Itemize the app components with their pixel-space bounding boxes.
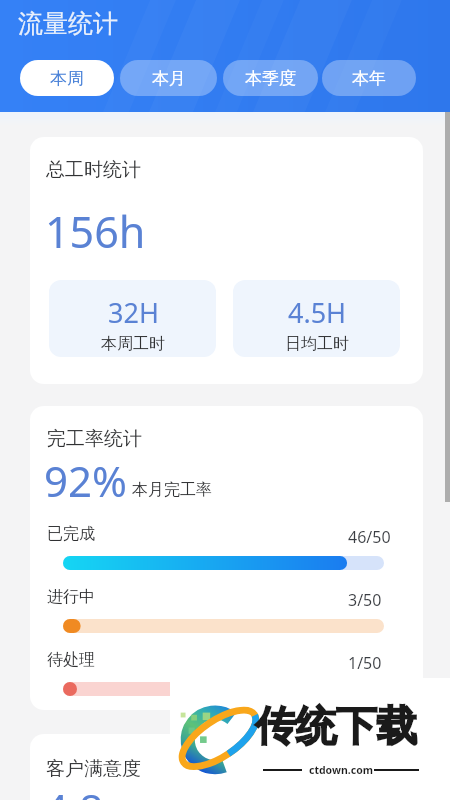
button[interactable]: 4.5H [233,280,400,357]
staticText: 3/50 [348,589,382,611]
staticText: 流量统计 [18,8,118,39]
button[interactable]: 本周 [20,60,114,96]
staticText: 进行中 [47,587,95,607]
button[interactable]: 本月 [120,60,217,96]
staticText: 本周 [50,68,84,89]
staticText: 92% [44,452,127,509]
staticText: 待处理 [47,650,95,670]
staticText: 本周工时 [101,334,165,354]
button[interactable]: 32H [49,280,216,357]
staticText: 32H [108,294,159,331]
button[interactable]: 本年 [322,60,416,96]
staticText: 本月 [152,68,186,89]
staticText: 客户满意度 [46,757,141,781]
staticText: 本月完工率 [132,480,212,500]
staticText: 本季度 [245,68,296,89]
staticText: 总工时统计 [46,158,141,182]
staticText: 4.5H [288,294,347,331]
staticText: 日均工时 [285,334,349,354]
staticText: ctdown.com [309,763,373,777]
staticText: 4.8 [44,780,104,800]
staticText: 已完成 [47,524,95,544]
staticText: 1/50 [348,652,382,674]
staticText: 156h [45,202,146,261]
staticText: 46/50 [348,526,391,548]
staticText: 完工率统计 [47,427,142,451]
staticText: 本年 [352,68,386,89]
staticText: 传统下载 [255,701,417,753]
button[interactable]: 本季度 [223,60,318,96]
